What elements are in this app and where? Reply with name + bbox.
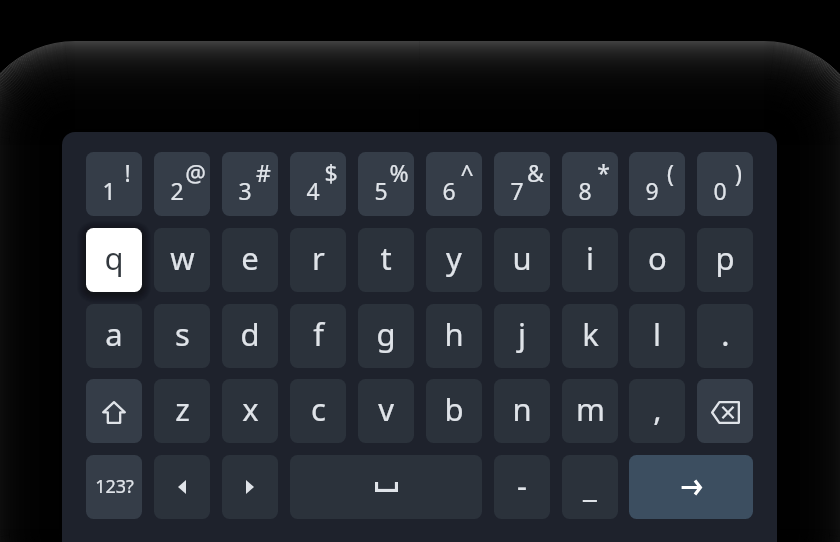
button[interactable]: v [358, 379, 414, 443]
staticText: 3 [238, 175, 252, 206]
staticText: l [653, 313, 661, 355]
button[interactable]: x [222, 379, 278, 443]
button[interactable]: b [426, 379, 482, 443]
button[interactable]: 9 [629, 152, 685, 216]
staticText: c [311, 388, 326, 430]
button[interactable]: p [697, 228, 753, 292]
staticText: - [517, 464, 527, 506]
button[interactable]: o [629, 228, 685, 292]
staticText: 5 [374, 175, 388, 206]
staticText: m [576, 388, 605, 430]
staticText: p [715, 237, 735, 279]
staticText: v [378, 388, 394, 430]
staticText: 123? [95, 474, 134, 499]
button[interactable]: c [290, 379, 346, 443]
staticText: 9 [645, 175, 659, 206]
staticText: ! [124, 157, 131, 188]
button[interactable]: 2 [154, 152, 210, 216]
staticText: 7 [510, 175, 524, 206]
staticText: 8 [578, 175, 592, 206]
staticText: d [240, 313, 260, 355]
staticText: j [518, 313, 526, 355]
button[interactable]: y [426, 228, 482, 292]
staticText: o [648, 237, 667, 279]
button[interactable]: i [562, 228, 618, 292]
button[interactable]: l [629, 304, 685, 368]
button[interactable]: 1 [86, 152, 142, 216]
staticText: 0 [713, 175, 727, 206]
staticText: 1 [102, 175, 116, 206]
staticText: i [586, 237, 594, 279]
staticText: . [721, 313, 730, 355]
staticText: 4 [306, 175, 320, 206]
button[interactable]: k [562, 304, 618, 368]
staticText: _ [583, 464, 597, 506]
staticText: y [446, 237, 462, 279]
staticText: e [241, 237, 259, 279]
staticText: $ [324, 157, 338, 188]
staticText: b [444, 388, 464, 430]
button[interactable]: 4 [290, 152, 346, 216]
button[interactable]: Enter [629, 455, 753, 519]
button[interactable]: d [222, 304, 278, 368]
staticText: k [582, 313, 599, 355]
button[interactable]: n [494, 379, 550, 443]
staticText: ^ [460, 157, 474, 188]
button[interactable]: j [494, 304, 550, 368]
button[interactable]: Underscore [562, 455, 618, 519]
button[interactable]: Numbers and symbols [86, 455, 142, 519]
staticText: 2 [170, 175, 184, 206]
button[interactable]: e [222, 228, 278, 292]
staticText: n [512, 388, 532, 430]
button[interactable]: , [629, 379, 685, 443]
button[interactable]: Shift [86, 379, 142, 443]
button[interactable]: t [358, 228, 414, 292]
staticText: q [104, 237, 124, 279]
button[interactable]: h [426, 304, 482, 368]
button[interactable]: . [697, 304, 753, 368]
button[interactable]: 3 [222, 152, 278, 216]
button[interactable]: 5 [358, 152, 414, 216]
staticText: w [170, 237, 195, 279]
staticText: 6 [442, 175, 456, 206]
button[interactable]: z [154, 379, 210, 443]
button[interactable]: m [562, 379, 618, 443]
staticText: ) [735, 157, 742, 188]
staticText: u [512, 237, 532, 279]
button[interactable]: Hyphen [494, 455, 550, 519]
button[interactable]: 7 [494, 152, 550, 216]
staticText: ( [667, 157, 674, 188]
button[interactable]: s [154, 304, 210, 368]
button[interactable]: a [86, 304, 142, 368]
button[interactable]: Space [290, 455, 482, 519]
button[interactable]: Backspace [697, 379, 753, 443]
button[interactable]: 8 [562, 152, 618, 216]
staticText: r [312, 237, 325, 279]
button[interactable]: Move right [222, 455, 278, 519]
staticText: & [527, 157, 544, 188]
staticText: x [242, 388, 259, 430]
button[interactable]: u [494, 228, 550, 292]
button[interactable]: 0 [697, 152, 753, 216]
staticText: * [597, 157, 610, 188]
staticText: s [175, 313, 190, 355]
button[interactable]: r [290, 228, 346, 292]
staticText: @ [185, 157, 206, 188]
staticText: % [389, 157, 409, 188]
button[interactable]: Move left [154, 455, 210, 519]
button[interactable]: g [358, 304, 414, 368]
staticText: t [380, 237, 392, 279]
button[interactable]: f [290, 304, 346, 368]
staticText: f [313, 313, 324, 355]
staticText: h [444, 313, 464, 355]
button[interactable]: 6 [426, 152, 482, 216]
button[interactable]: w [154, 228, 210, 292]
staticText: # [256, 157, 271, 188]
staticText: a [105, 313, 123, 355]
staticText: , [653, 388, 662, 430]
button[interactable]: q [86, 228, 142, 292]
staticText: g [376, 313, 396, 355]
staticText: z [175, 388, 190, 430]
